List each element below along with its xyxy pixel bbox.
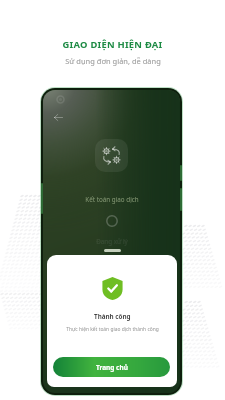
staticText: Kết toán giao dịch xyxy=(85,195,139,204)
staticText: Sử dụng đơn giản, dễ dàng xyxy=(65,56,161,66)
staticText: GIAO DIỆN HIỆN ĐẠI xyxy=(62,38,163,51)
staticText: Đang xử lý xyxy=(96,237,128,246)
button[interactable]: Back xyxy=(51,110,65,124)
staticText: Trang chủ xyxy=(96,363,128,372)
button[interactable]: Trang chủ xyxy=(53,357,170,377)
staticText: Thành công xyxy=(94,312,131,321)
staticText: Thực hiện kết toán giao dịch thành công xyxy=(66,326,159,333)
